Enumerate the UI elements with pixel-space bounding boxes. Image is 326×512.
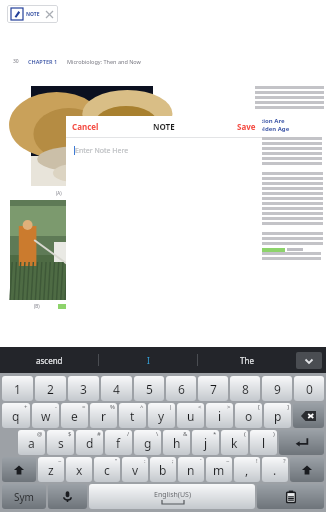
- button[interactable]: .: [262, 457, 288, 482]
- staticText: 2: [47, 381, 54, 397]
- button[interactable]: s: [47, 430, 74, 455]
- staticText: ): [273, 430, 275, 438]
- staticText: n: [187, 462, 195, 478]
- button[interactable]: Enter Note Here: [66, 138, 262, 340]
- staticText: a: [28, 435, 35, 451]
- staticText: p: [274, 408, 282, 424]
- staticText: &: [183, 430, 188, 438]
- staticText: g: [144, 435, 152, 451]
- button[interactable]: f: [105, 430, 132, 455]
- staticText: !: [256, 457, 258, 465]
- button[interactable]: ascend: [0, 347, 98, 373]
- staticText: [: [258, 403, 260, 411]
- button[interactable]: o: [235, 403, 262, 428]
- button[interactable]: Space: [89, 484, 255, 509]
- button[interactable]: Expand suggestions: [296, 352, 322, 369]
- button[interactable]: 0: [294, 376, 324, 401]
- staticText: Microbiology: Then and Now: [67, 58, 141, 65]
- staticText: English(US): [154, 490, 191, 500]
- staticText: ?: [283, 457, 286, 465]
- button[interactable]: 5: [134, 376, 164, 401]
- button[interactable]: I: [99, 347, 197, 373]
- button[interactable]: r: [90, 403, 117, 428]
- button[interactable]: Close note tab: [44, 9, 54, 19]
- staticText: h: [173, 435, 181, 451]
- button[interactable]: l: [250, 430, 277, 455]
- staticText: NOTE: [153, 121, 175, 132]
- staticText: 1: [14, 381, 21, 397]
- button[interactable]: Shift: [290, 457, 324, 482]
- staticText: 0: [306, 381, 313, 397]
- staticText: ]: [287, 403, 289, 411]
- staticText: %: [110, 403, 115, 411]
- button[interactable]: c: [94, 457, 120, 482]
- staticText: (: [244, 430, 246, 438]
- button[interactable]: Sym: [2, 484, 46, 509]
- button[interactable]: g: [134, 430, 161, 455]
- staticText: ascend: [36, 355, 63, 366]
- button[interactable]: The: [198, 347, 296, 373]
- button[interactable]: x: [66, 457, 92, 482]
- staticText: (A): [56, 190, 62, 196]
- button[interactable]: i: [206, 403, 233, 428]
- button[interactable]: ,: [234, 457, 260, 482]
- staticText: /: [127, 430, 130, 438]
- button[interactable]: b: [150, 457, 176, 482]
- button[interactable]: 1: [2, 376, 33, 401]
- button[interactable]: k: [221, 430, 248, 455]
- staticText: +: [24, 403, 28, 411]
- staticText: :: [144, 457, 146, 465]
- button[interactable]: Backspace: [293, 403, 324, 428]
- button[interactable]: w: [32, 403, 59, 428]
- staticText: Sym: [14, 490, 34, 504]
- button[interactable]: z: [38, 457, 64, 482]
- button[interactable]: p: [264, 403, 291, 428]
- staticText: 5: [146, 381, 153, 397]
- button[interactable]: m: [206, 457, 232, 482]
- button[interactable]: 9: [262, 376, 292, 401]
- button[interactable]: y: [148, 403, 175, 428]
- button[interactable]: NOTE: [7, 5, 58, 23]
- staticText: >: [227, 403, 231, 411]
- staticText: The: [240, 355, 254, 366]
- button[interactable]: 4: [101, 376, 132, 401]
- button[interactable]: 2: [35, 376, 66, 401]
- button[interactable]: 6: [166, 376, 196, 401]
- button[interactable]: 3: [68, 376, 99, 401]
- button[interactable]: j: [192, 430, 219, 455]
- staticText: i: [218, 408, 222, 424]
- staticText: t: [130, 408, 135, 424]
- button[interactable]: e: [61, 403, 88, 428]
- staticText: c: [104, 462, 110, 478]
- staticText: -: [55, 403, 57, 411]
- staticText: x: [76, 462, 83, 478]
- button[interactable]: Voice input: [48, 484, 87, 509]
- staticText: f: [116, 435, 121, 451]
- staticText: o: [245, 408, 253, 424]
- button[interactable]: n: [178, 457, 204, 482]
- button[interactable]: 8: [230, 376, 260, 401]
- button[interactable]: Enter: [279, 430, 324, 455]
- staticText: I: [147, 355, 150, 366]
- staticText: ;: [172, 457, 174, 465]
- button[interactable]: t: [119, 403, 146, 428]
- button[interactable]: Clipboard: [257, 484, 324, 509]
- staticText: q: [12, 408, 20, 424]
- button[interactable]: a: [18, 430, 45, 455]
- staticText: y: [158, 408, 165, 424]
- staticText: 7: [210, 381, 217, 397]
- staticText: =: [82, 403, 86, 411]
- button[interactable]: 7: [198, 376, 228, 401]
- button[interactable]: v: [122, 457, 148, 482]
- staticText: 4: [113, 381, 120, 397]
- button[interactable]: Shift: [2, 457, 36, 482]
- button[interactable]: h: [163, 430, 190, 455]
- button[interactable]: d: [76, 430, 103, 455]
- staticText: #: [97, 430, 101, 438]
- staticText: Cancel: [72, 121, 99, 132]
- staticText: u: [187, 408, 195, 424]
- button[interactable]: Save: [231, 117, 262, 136]
- button[interactable]: Cancel: [66, 117, 105, 136]
- button[interactable]: q: [2, 403, 30, 428]
- button[interactable]: u: [177, 403, 204, 428]
